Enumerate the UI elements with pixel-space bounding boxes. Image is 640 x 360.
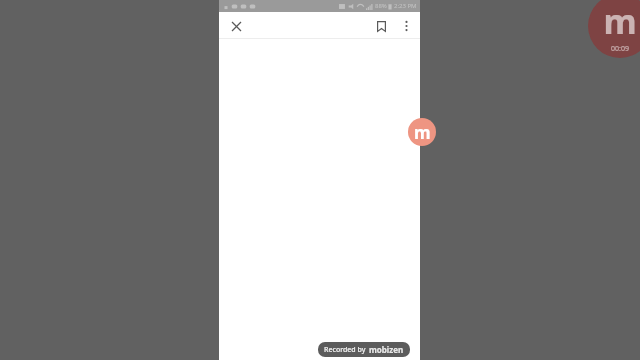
staticText: 00:09 [611, 44, 629, 54]
staticText: mobizen [369, 344, 404, 355]
button[interactable]: More options [394, 14, 418, 38]
staticText: 88% [375, 2, 387, 10]
staticText: m [603, 0, 637, 44]
staticText: m [414, 121, 431, 144]
button[interactable]: Close [223, 13, 249, 39]
staticText: Recorded by [324, 345, 366, 355]
button[interactable]: Bookmark [368, 13, 394, 39]
staticText: 2:23 PM [394, 2, 417, 10]
